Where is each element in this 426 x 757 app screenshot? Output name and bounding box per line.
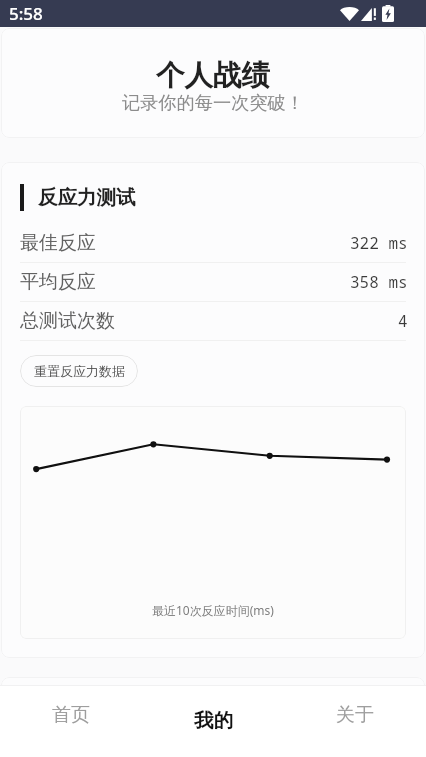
staticText: 平均反应 — [20, 270, 96, 294]
staticText: 最近10次反应时间(ms) — [152, 602, 274, 618]
staticText: 关于 — [336, 703, 374, 727]
button[interactable]: 我的 — [142, 685, 284, 757]
staticText: 最佳反应 — [20, 231, 96, 255]
staticText: 首页 — [52, 703, 90, 727]
button[interactable]: 重置反应力数据 — [20, 355, 138, 387]
button[interactable]: 首页 — [0, 685, 142, 757]
staticText: 个人战绩 — [156, 58, 270, 94]
staticText: 我的 — [194, 708, 233, 733]
staticText: 记录你的每一次突破！ — [122, 91, 304, 114]
staticText: 5:58 — [9, 2, 43, 25]
staticText: 358 ms — [350, 271, 408, 293]
staticText: 重置反应力数据 — [34, 363, 125, 379]
staticText: 322 ms — [350, 232, 408, 254]
staticText: 总测试次数 — [20, 309, 115, 333]
staticText: 反应力测试 — [38, 185, 136, 210]
button[interactable]: 关于 — [284, 685, 426, 757]
staticText: 4 — [398, 310, 408, 332]
